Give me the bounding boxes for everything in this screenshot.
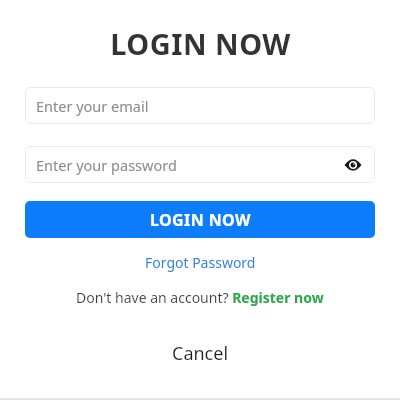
staticText: Enter your email [36,96,149,116]
staticText: LOGIN NOW [150,209,251,231]
staticText: Enter your password [36,155,177,175]
button[interactable]: Don't have an account? Register now [70,286,330,309]
staticText: Don't have an account? Register now [76,288,324,307]
button[interactable]: LOGIN NOW [25,201,375,238]
staticText: Forgot Password [145,253,256,272]
button[interactable]: Enter your password [25,146,375,183]
button[interactable]: Forgot Password [139,251,262,274]
button[interactable]: Enter your email [25,87,375,124]
staticText: Cancel [172,341,229,366]
button[interactable]: Show password [339,151,367,179]
button[interactable]: Cancel [162,337,239,370]
staticText: LOGIN NOW [110,24,291,63]
